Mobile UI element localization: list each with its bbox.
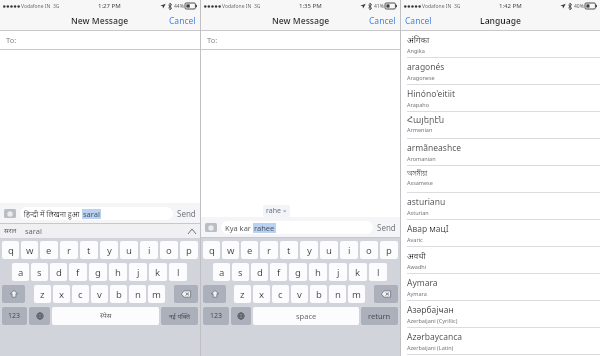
- staticText: अवधी: [407, 250, 426, 262]
- button[interactable]: अवधी: [401, 247, 600, 274]
- button[interactable]: अंगिका: [401, 31, 600, 58]
- button[interactable]: m: [348, 285, 365, 303]
- button[interactable]: Backspace: [374, 285, 398, 303]
- button[interactable]: Kya kar: [225, 221, 369, 234]
- button[interactable]: Shift: [2, 285, 25, 303]
- button[interactable]: d: [50, 263, 67, 281]
- button[interactable]: Change keyboard: [29, 307, 50, 325]
- button[interactable]: Change keyboard: [231, 307, 251, 325]
- button[interactable]: e: [241, 241, 258, 259]
- button[interactable]: j: [129, 263, 147, 281]
- button[interactable]: Cancel: [405, 15, 432, 27]
- button[interactable]: l: [169, 263, 187, 281]
- staticText: x: [59, 288, 65, 301]
- button[interactable]: q: [2, 241, 19, 259]
- button[interactable]: Cancel: [369, 15, 396, 27]
- button[interactable]: Hinóno'eitiit: [401, 85, 600, 112]
- button[interactable]: h: [109, 263, 127, 281]
- button[interactable]: Cancel: [169, 15, 196, 27]
- button[interactable]: स्पेस: [52, 307, 159, 325]
- button[interactable]: o: [160, 241, 178, 259]
- button[interactable]: c: [72, 285, 89, 303]
- button[interactable]: t: [80, 241, 98, 259]
- button[interactable]: v: [291, 285, 308, 303]
- button[interactable]: 123: [2, 307, 27, 325]
- button[interactable]: k: [149, 263, 167, 281]
- button[interactable]: space: [253, 307, 359, 325]
- button[interactable]: Азәрбајҹан: [401, 301, 600, 328]
- button[interactable]: u: [320, 241, 338, 259]
- button[interactable]: j: [329, 263, 347, 281]
- button[interactable]: i: [140, 241, 158, 259]
- button[interactable]: Camera: [4, 209, 16, 218]
- button[interactable]: o: [360, 241, 378, 259]
- button[interactable]: n: [129, 285, 146, 303]
- button[interactable]: g: [89, 263, 107, 281]
- button[interactable]: i: [340, 241, 358, 259]
- button[interactable]: Հայերէն: [401, 112, 600, 139]
- button[interactable]: Azərbaycanca: [401, 328, 600, 355]
- button[interactable]: অসমীয়া: [401, 166, 600, 193]
- button[interactable]: Send: [377, 222, 396, 233]
- button[interactable]: s: [31, 263, 48, 281]
- button[interactable]: b: [110, 285, 127, 303]
- button[interactable]: f: [270, 263, 287, 281]
- button[interactable]: r: [260, 241, 278, 259]
- button[interactable]: return: [361, 307, 398, 325]
- button[interactable]: e: [40, 241, 58, 259]
- staticText: u: [126, 244, 132, 257]
- button[interactable]: l: [369, 263, 387, 281]
- button[interactable]: Camera: [205, 223, 217, 232]
- button[interactable]: हिन्दी में लिखना हुआ: [24, 207, 169, 220]
- button[interactable]: y: [100, 241, 118, 259]
- button[interactable]: z: [34, 285, 51, 303]
- button[interactable]: नई पंक्ति: [161, 307, 198, 325]
- button[interactable]: q: [203, 241, 220, 259]
- button[interactable]: g: [289, 263, 307, 281]
- button[interactable]: Авар мацӀ: [401, 220, 600, 247]
- button[interactable]: f: [69, 263, 87, 281]
- staticText: o: [366, 244, 372, 257]
- button[interactable]: m: [148, 285, 165, 303]
- button[interactable]: Shift: [203, 285, 226, 303]
- staticText: g: [95, 266, 101, 279]
- button[interactable]: z: [234, 285, 251, 303]
- button[interactable]: a: [213, 263, 230, 281]
- button[interactable]: Aymara: [401, 274, 600, 301]
- staticText: f: [76, 266, 80, 279]
- button[interactable]: Backspace: [174, 285, 198, 303]
- button[interactable]: r: [60, 241, 78, 259]
- button[interactable]: a: [12, 263, 29, 281]
- staticText: aragonés: [407, 61, 445, 73]
- button[interactable]: u: [120, 241, 138, 259]
- button[interactable]: b: [310, 285, 327, 303]
- button[interactable]: 123: [203, 307, 229, 325]
- staticText: h: [315, 266, 321, 279]
- button[interactable]: aragonés: [401, 58, 600, 85]
- button[interactable]: Expand suggestions: [188, 229, 196, 234]
- button[interactable]: h: [309, 263, 327, 281]
- button[interactable]: Send: [177, 208, 196, 219]
- button[interactable]: d: [251, 263, 268, 281]
- button[interactable]: armãneashce: [401, 139, 600, 166]
- button[interactable]: n: [329, 285, 346, 303]
- button[interactable]: asturianu: [401, 193, 600, 220]
- button[interactable]: k: [349, 263, 367, 281]
- button[interactable]: w: [222, 241, 239, 259]
- button[interactable]: rahe: [266, 206, 287, 216]
- button[interactable]: p: [180, 241, 198, 259]
- button[interactable]: x: [253, 285, 270, 303]
- button[interactable]: c: [272, 285, 289, 303]
- button[interactable]: w: [21, 241, 38, 259]
- button[interactable]: y: [300, 241, 318, 259]
- staticText: k: [155, 266, 161, 279]
- button[interactable]: p: [380, 241, 398, 259]
- button[interactable]: x: [53, 285, 70, 303]
- button[interactable]: v: [91, 285, 108, 303]
- staticText: 1:35 PM: [299, 2, 322, 10]
- button[interactable]: t: [280, 241, 298, 259]
- staticText: v: [97, 288, 102, 301]
- staticText: Cancel: [169, 15, 196, 27]
- button[interactable]: s: [232, 263, 249, 281]
